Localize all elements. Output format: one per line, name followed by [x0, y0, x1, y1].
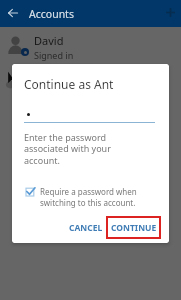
button[interactable]: CANCEL — [67, 216, 105, 239]
staticText: David — [34, 33, 64, 48]
staticText: Enter the password associated with your … — [24, 131, 111, 167]
button[interactable]: CONTINUE — [106, 216, 161, 239]
staticText: CANCEL — [69, 222, 103, 234]
button[interactable]: Back — [4, 4, 21, 21]
button[interactable]: Add account — [162, 4, 179, 21]
button[interactable]: David — [0, 27, 181, 61]
staticText: Continue as Ant — [24, 76, 114, 92]
button[interactable]: Require a password when switching to thi… — [25, 186, 161, 208]
staticText: Accounts — [29, 7, 74, 21]
staticText: Require a password when switching to thi… — [40, 186, 161, 208]
staticText: CONTINUE — [111, 222, 157, 234]
staticText: Signed in — [34, 49, 74, 61]
